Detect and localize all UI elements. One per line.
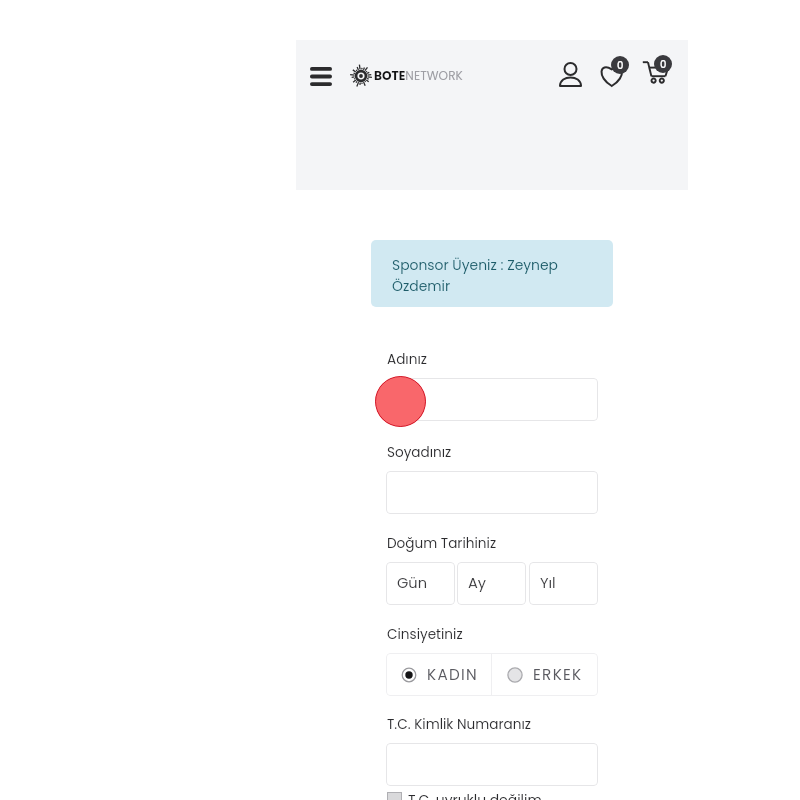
staticText: Doğum Tarihiniz [387,534,497,553]
button[interactable]: Account [550,54,590,94]
button[interactable] [386,471,598,514]
button[interactable]: ERKEK [492,653,598,696]
staticText: Sponsor Üyeniz : Zeynep Özdemir [392,255,574,296]
staticText: Yıl [540,573,556,593]
staticText: Adınız [387,350,427,369]
staticText: ERKEK [533,664,583,685]
button[interactable]: Yıl [529,562,598,605]
staticText: 0 [617,58,624,72]
staticText: Soyadınız [387,443,452,462]
staticText: Gün [397,573,428,593]
button[interactable]: Gün [386,562,455,605]
button[interactable]: Bote Network home [349,64,373,88]
button[interactable]: BOTENETWORK [374,67,463,84]
staticText: KADIN [427,664,478,685]
button[interactable]: KADIN [386,653,491,696]
button[interactable]: T.C. uyruklu değilim [387,790,542,800]
button[interactable] [386,743,598,786]
button[interactable]: Ay [457,562,526,605]
button[interactable] [386,378,598,421]
staticText: BOTENETWORK [374,67,463,84]
button[interactable]: Favorites [595,55,631,91]
button[interactable]: Menu [301,56,341,96]
staticText: Cinsiyetiniz [387,625,463,644]
staticText: T.C. Kimlik Numaranız [387,715,531,734]
staticText: T.C. uyruklu değilim [408,790,542,800]
button[interactable]: Cart [638,54,674,90]
staticText: Ay [468,573,487,593]
staticText: 0 [660,57,667,71]
